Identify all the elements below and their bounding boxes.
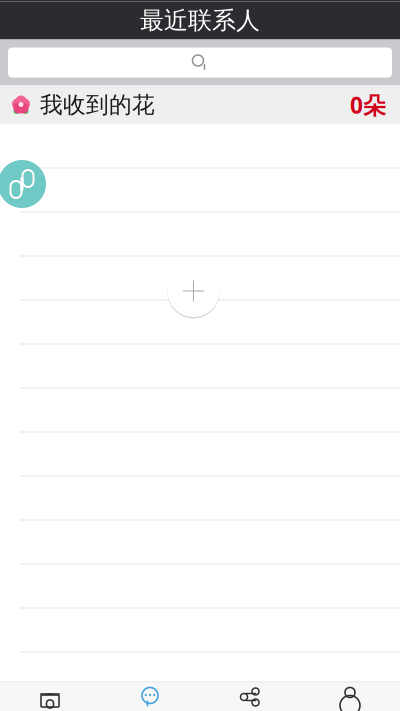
- button[interactable]: 我: [300, 682, 400, 711]
- button[interactable]: 聊天: [100, 682, 200, 711]
- button[interactable]: Add: [164, 262, 222, 320]
- staticText: 最近联系人: [140, 6, 260, 35]
- staticText: 0朵: [350, 90, 386, 120]
- staticText: 3:50 AM: [193, 0, 260, 2]
- button[interactable]: 我收到的花: [0, 85, 400, 124]
- button[interactable]: Contact avatar: [0, 160, 46, 208]
- button[interactable]: 分享: [200, 682, 300, 711]
- staticText: 我收到的花: [40, 91, 155, 119]
- button[interactable]: 首页: [0, 682, 100, 711]
- button[interactable]: [8, 47, 392, 77]
- staticText: Carrier: [12, 0, 68, 2]
